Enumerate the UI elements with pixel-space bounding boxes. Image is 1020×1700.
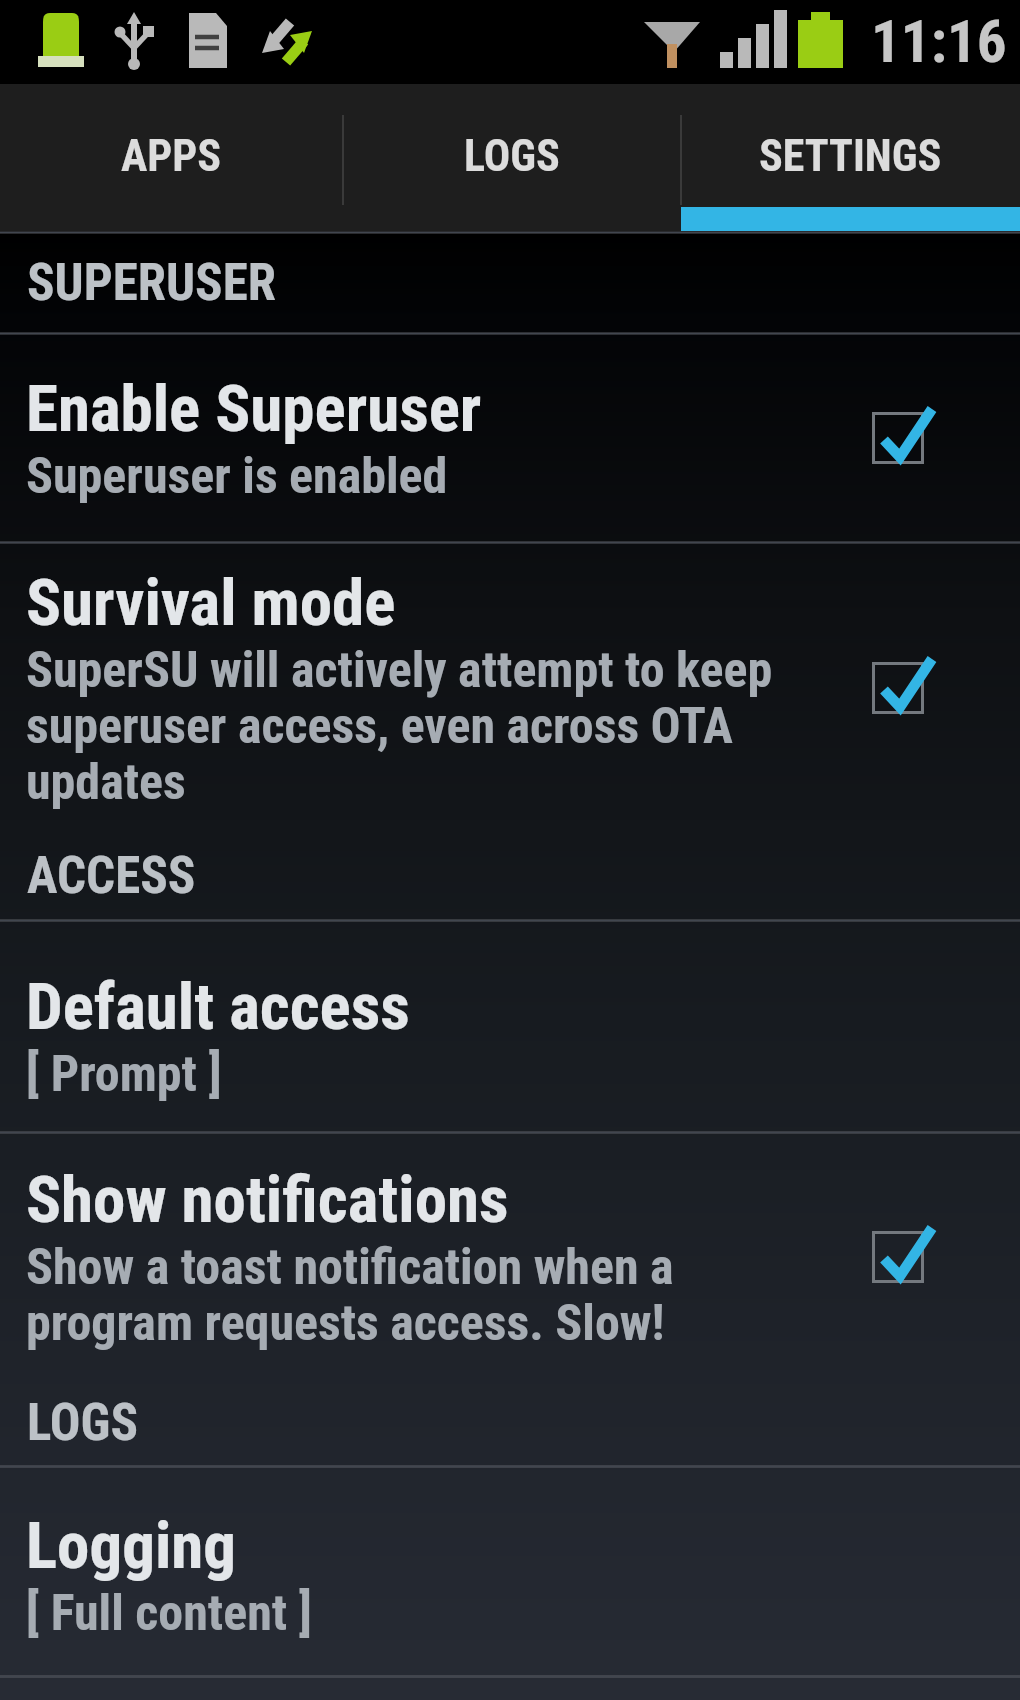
staticText: ACCESS: [27, 846, 196, 906]
staticText: SETTINGS: [759, 130, 942, 182]
button[interactable]: Enable Superuser checkbox: [862, 396, 946, 480]
staticText: Default access: [26, 969, 410, 1045]
button[interactable]: Default access: [0, 922, 1020, 1131]
staticText: LOGS: [464, 130, 560, 182]
staticText: SuperSU will actively attempt to keep su…: [26, 641, 773, 812]
staticText: Show notifications: [26, 1162, 509, 1238]
staticText: LOGS: [27, 1393, 138, 1453]
button[interactable]: Show notifications: [0, 1134, 1020, 1380]
staticText: Superuser is enabled: [26, 447, 448, 506]
button[interactable]: Survival mode checkbox: [862, 646, 946, 730]
staticText: APPS: [121, 130, 222, 182]
button[interactable]: LOGS: [343, 84, 681, 231]
staticText: Show a toast notification when a program…: [26, 1238, 674, 1353]
button[interactable]: APPS: [0, 84, 343, 231]
button[interactable]: Survival mode: [0, 544, 1020, 832]
staticText: 11:16: [871, 7, 1007, 76]
staticText: SUPERUSER: [27, 253, 276, 313]
staticText: [ Prompt ]: [26, 1045, 222, 1104]
staticText: Logging: [26, 1508, 237, 1584]
button[interactable]: Enable Superuser: [0, 335, 1020, 541]
staticText: [ Full content ]: [26, 1584, 312, 1643]
button[interactable]: Logging: [0, 1468, 1020, 1675]
button[interactable]: SETTINGS: [681, 84, 1020, 231]
button[interactable]: Show notifications checkbox: [862, 1215, 946, 1299]
staticText: Survival mode: [26, 565, 396, 641]
staticText: Enable Superuser: [26, 371, 482, 447]
